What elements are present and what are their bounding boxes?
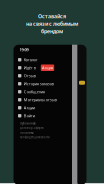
button[interactable]: Акции <box>13 104 72 112</box>
staticText: конфиденциальности <box>20 135 50 139</box>
staticText: Акции <box>24 105 35 110</box>
button[interactable]: Материалы отзыв <box>13 96 72 104</box>
staticText: 19:09 <box>19 47 28 52</box>
staticText: История заказов <box>24 81 54 86</box>
staticText: Каталог <box>24 57 38 62</box>
staticText: Идёт в <box>24 65 36 70</box>
staticText: Материалы отзыв <box>24 97 57 102</box>
staticText: Войти <box>24 113 35 118</box>
staticText: на связи с любимым <box>26 20 78 27</box>
staticText: Публичная <box>20 122 36 125</box>
staticText: Отзыв <box>24 73 36 78</box>
button[interactable]: История заказов <box>13 80 72 88</box>
button[interactable]: Отзыв <box>13 72 72 80</box>
button[interactable]: Каталог <box>13 56 72 64</box>
staticText: брендом <box>41 27 63 35</box>
staticText: Акция <box>42 65 53 70</box>
staticText: Политика <box>20 131 33 134</box>
button[interactable]: Идёт в <box>13 64 72 72</box>
button[interactable]: Войти <box>13 112 72 120</box>
staticText: Сообщения <box>24 89 45 94</box>
staticText: договор-оферта <box>20 126 43 130</box>
button[interactable]: Сообщения <box>13 88 72 96</box>
staticText: Оставайся <box>38 13 66 20</box>
